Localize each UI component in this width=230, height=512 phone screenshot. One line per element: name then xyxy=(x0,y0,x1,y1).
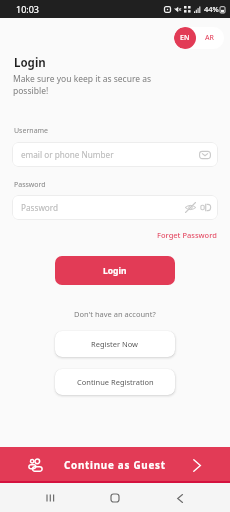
button[interactable]: Back xyxy=(166,484,194,512)
button[interactable]: Recents xyxy=(36,484,64,512)
staticText: 10:03 xyxy=(16,3,40,15)
staticText: Password xyxy=(14,180,46,190)
button[interactable]: Register Now xyxy=(55,331,175,357)
staticText: Make sure you keep it as secure as possi… xyxy=(13,73,161,97)
staticText: Forget Password xyxy=(157,230,217,240)
staticText: email or phone Number xyxy=(21,149,114,160)
button[interactable]: Continue Registration xyxy=(55,369,175,395)
button[interactable]: email or phone Number xyxy=(12,142,218,167)
staticText: Password xyxy=(21,202,59,213)
button[interactable]: Password xyxy=(12,195,218,220)
other: Guests xyxy=(28,458,43,473)
staticText: 44% xyxy=(204,4,219,14)
staticText: AR xyxy=(205,33,215,43)
staticText: Login xyxy=(14,55,46,71)
staticText: Continue as Guest xyxy=(64,459,166,472)
other: Continue xyxy=(193,459,201,472)
staticText: Login xyxy=(103,265,127,277)
button[interactable]: Forget Password xyxy=(155,229,219,241)
staticText: Register Now xyxy=(91,339,139,349)
staticText: Don't have an account? xyxy=(74,309,156,319)
button[interactable]: Guests xyxy=(0,447,230,483)
button[interactable]: EN xyxy=(174,27,224,49)
button[interactable]: Login xyxy=(55,256,175,285)
staticText: EN xyxy=(180,33,190,43)
button[interactable]: Home xyxy=(101,484,129,512)
staticText: Continue Registration xyxy=(77,377,154,387)
staticText: Username xyxy=(14,126,49,136)
